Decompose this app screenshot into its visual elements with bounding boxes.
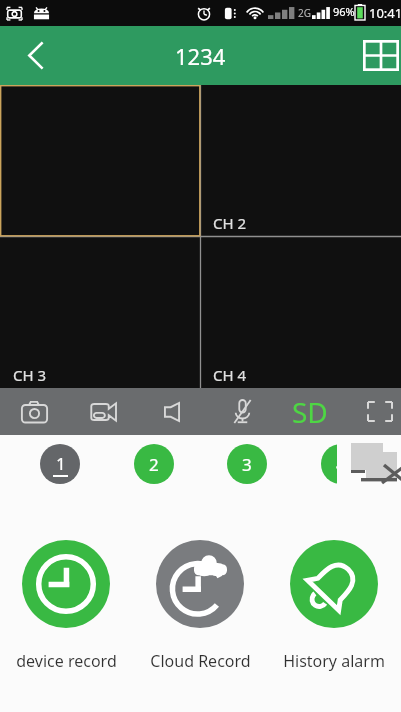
button[interactable]: History alarm: [268, 540, 400, 672]
button[interactable]: 3: [227, 444, 267, 484]
button[interactable]: 1: [40, 444, 80, 484]
staticText: 10:41: [369, 4, 401, 22]
button[interactable]: Speaker: [139, 388, 205, 435]
staticText: 1234: [175, 41, 226, 71]
button[interactable]: Microphone: [209, 388, 275, 435]
button[interactable]: Snapshot: [1, 388, 67, 435]
staticText: 4: [336, 453, 337, 476]
button[interactable]: Fullscreen: [347, 388, 401, 435]
staticText: 96%: [333, 4, 355, 19]
button[interactable]: 4: [321, 444, 337, 484]
button[interactable]: 2: [134, 444, 174, 484]
staticText: 2G: [298, 6, 311, 20]
staticText: device record: [16, 650, 117, 672]
button[interactable]: Back: [10, 26, 56, 85]
button[interactable]: Record: [70, 388, 136, 435]
staticText: 2: [149, 453, 159, 476]
staticText: CH 2: [213, 213, 247, 233]
button[interactable]: Cloud Record: [134, 540, 266, 672]
staticText: 3: [242, 453, 252, 476]
button[interactable]: Split view layout: [349, 26, 401, 85]
staticText: 1: [56, 452, 66, 475]
staticText: CH 3: [13, 365, 47, 385]
button[interactable]: Video quality: [277, 388, 343, 435]
staticText: History alarm: [283, 650, 385, 672]
button[interactable]: device record: [0, 540, 132, 672]
staticText: Cloud Record: [150, 650, 251, 672]
staticText: CH 4: [213, 365, 247, 385]
staticText: SD: [292, 393, 328, 431]
